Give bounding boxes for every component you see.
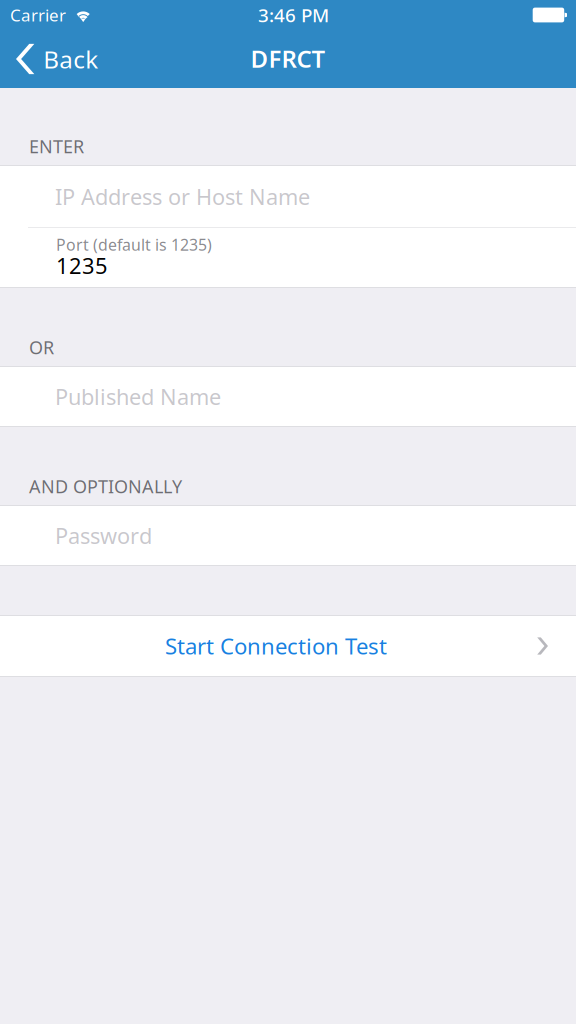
button[interactable]: Published Name	[0, 367, 576, 426]
staticText: IP Address or Host Name	[55, 182, 310, 211]
button[interactable]: IP Address or Host Name	[0, 166, 576, 227]
staticText: Back	[43, 42, 98, 76]
staticText: 3:46 PM	[258, 2, 329, 28]
staticText: 1235	[56, 251, 108, 280]
staticText: Published Name	[55, 382, 221, 411]
staticText: Carrier	[10, 3, 66, 27]
staticText: AND OPTIONALLY	[29, 474, 182, 498]
button[interactable]: Start Connection Test	[0, 616, 576, 676]
button[interactable]: Port (default is 1235)	[0, 228, 576, 287]
button[interactable]: Password	[0, 506, 576, 565]
staticText: Password	[55, 521, 152, 550]
staticText: Start Connection Test	[165, 631, 387, 661]
staticText: ENTER	[29, 134, 84, 158]
staticText: Port (default is 1235)	[56, 234, 212, 255]
staticText: DFRCT	[250, 42, 325, 75]
button[interactable]: Back	[0, 36, 110, 88]
staticText: OR	[29, 335, 54, 359]
